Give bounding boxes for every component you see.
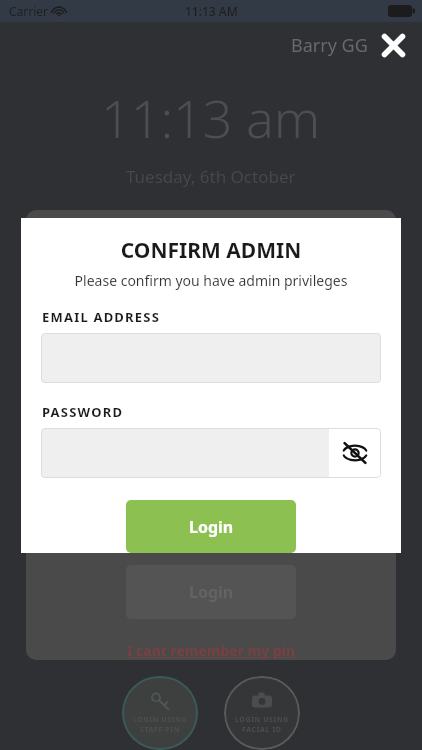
button[interactable]: Close [378,30,408,60]
staticText: Login [189,581,234,603]
staticText: EMAIL ADDRESS [42,308,161,326]
button[interactable]: Show password [329,428,381,478]
staticText: Tuesday, 6th October [126,165,296,188]
staticText: CONFIRM ADMIN [21,236,401,265]
staticText: FACIAL ID [242,725,282,735]
button[interactable]: LOGIN USING [122,676,198,750]
button[interactable]: LOGIN USING [224,676,300,750]
staticText: Barry GG [291,33,368,58]
staticText: Carrier [9,3,49,19]
staticText: Please confirm you have admin privileges [21,271,401,290]
staticText: I cant remember my pin [127,641,296,660]
staticText: PASSWORD [42,403,124,421]
staticText: Login [189,516,234,538]
staticText: 11:13 am [101,82,321,153]
staticText: LOGIN USING [235,715,289,725]
button[interactable] [41,428,329,478]
staticText: LOGIN USING [133,715,187,725]
button[interactable] [41,333,381,383]
button[interactable]: I cant remember my pin [127,641,296,660]
staticText: 11:13 AM [185,3,238,19]
button[interactable]: Login [126,500,296,553]
staticText: STAFF PIN [140,725,180,735]
